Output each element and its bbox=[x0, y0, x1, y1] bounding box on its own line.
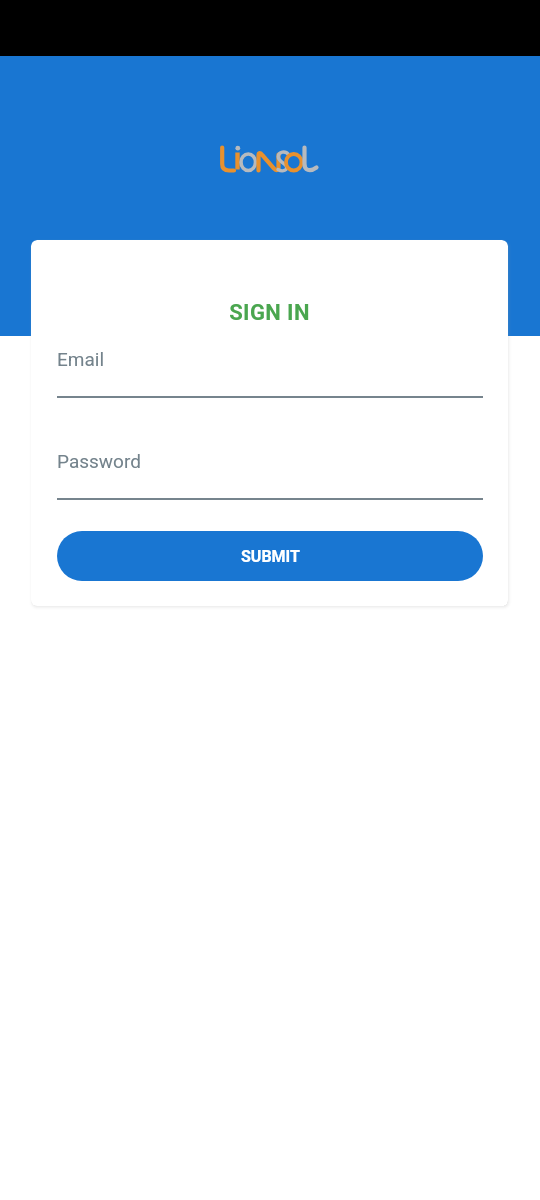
staticText: SIGN IN bbox=[31, 300, 508, 326]
button[interactable]: Password bbox=[57, 442, 483, 500]
staticText: Email bbox=[57, 348, 105, 370]
other: LiONSOL logo bbox=[218, 143, 322, 177]
staticText: SUBMIT bbox=[241, 547, 300, 566]
staticText: Password bbox=[57, 450, 141, 472]
button[interactable]: Email bbox=[57, 340, 483, 398]
button[interactable]: SUBMIT bbox=[57, 531, 483, 581]
